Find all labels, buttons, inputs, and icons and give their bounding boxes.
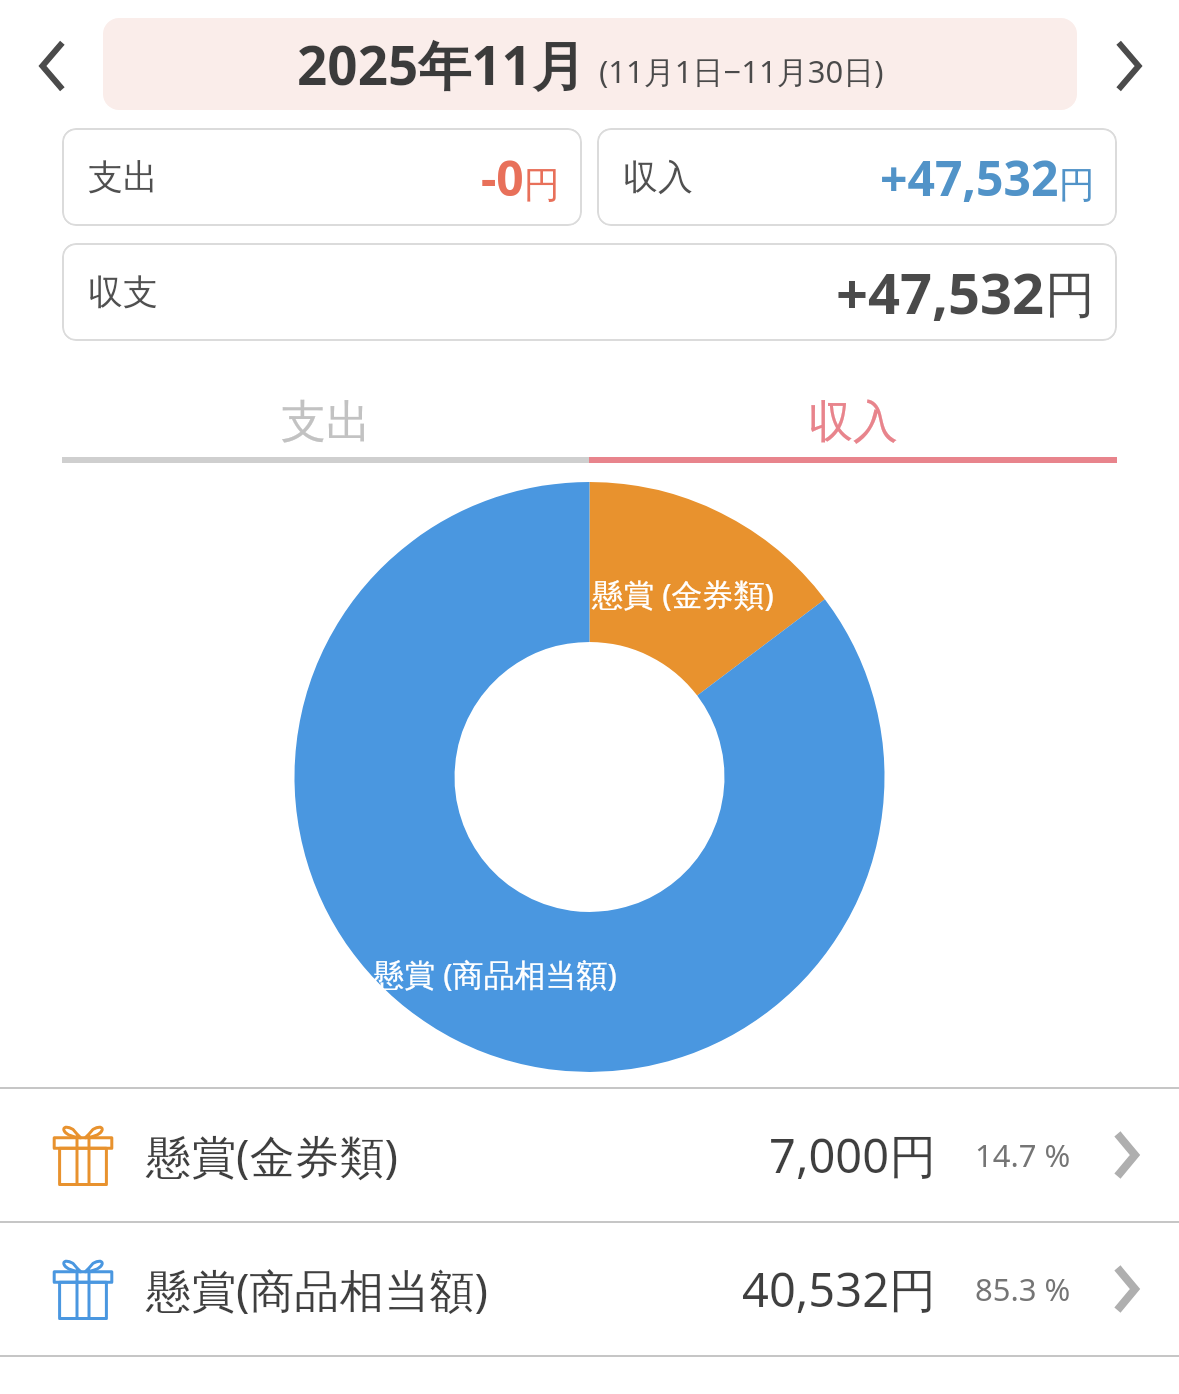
button[interactable]: 収入 (597, 128, 1117, 226)
button[interactable]: 前の月 (14, 24, 90, 108)
staticText: 支出 (88, 155, 158, 199)
staticText: +47,532 (836, 254, 1045, 330)
staticText: -0 (481, 145, 524, 210)
button[interactable]: 懸賞(金券類) (0, 1089, 1179, 1221)
button[interactable]: 次の月 (1091, 24, 1167, 108)
staticText: 懸賞 (金券類) (592, 573, 774, 615)
staticText: 円 (1045, 264, 1095, 327)
staticText: 円 (524, 162, 560, 207)
staticText: 収支 (88, 270, 158, 314)
staticText: 支出 (281, 394, 371, 451)
button[interactable]: 収入 (589, 387, 1117, 457)
staticText: 2025年11月 (297, 28, 585, 100)
button[interactable]: 懸賞(商品相当額) (0, 1223, 1179, 1355)
button[interactable]: 収支 (62, 243, 1117, 341)
staticText: 40,532円 (742, 1257, 937, 1321)
staticText: 7,000円 (769, 1123, 937, 1187)
staticText: 85.3 % (975, 1268, 1071, 1310)
staticText: 懸賞(金券類) (146, 1125, 399, 1186)
button[interactable]: 支出 (62, 387, 589, 457)
button[interactable]: 支出 (62, 128, 582, 226)
button[interactable]: 2025年11月 (103, 18, 1077, 110)
staticText: (11月1日−11月30日) (599, 50, 884, 92)
staticText: 円 (1059, 162, 1095, 207)
staticText: 懸賞 (商品相当額) (373, 953, 617, 995)
staticText: +47,532 (880, 145, 1059, 210)
staticText: 14.7 % (975, 1134, 1071, 1176)
staticText: 収入 (623, 155, 693, 199)
staticText: 懸賞(商品相当額) (146, 1259, 489, 1320)
staticText: 収入 (808, 394, 898, 451)
